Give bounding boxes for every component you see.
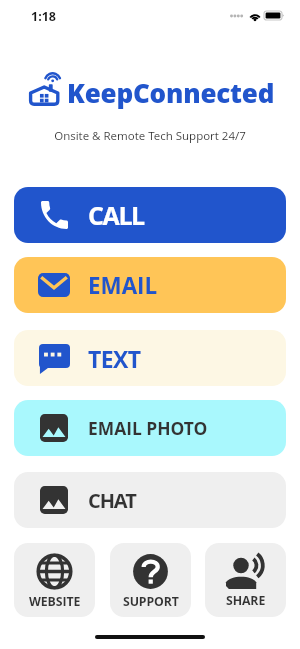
button[interactable]: TEXT: [14, 330, 286, 386]
button[interactable]: CALL: [14, 187, 286, 243]
button[interactable]: SUPPORT: [110, 543, 191, 617]
staticText: EMAIL PHOTO: [88, 416, 208, 440]
staticText: SUPPORT: [123, 593, 179, 610]
staticText: KeepConnected: [67, 75, 275, 110]
button[interactable]: WEBSITE: [14, 543, 95, 617]
staticText: CHAT: [88, 487, 136, 514]
staticText: WEBSITE: [29, 593, 81, 610]
staticText: Onsite & Remote Tech Support 24/7: [0, 128, 300, 144]
button[interactable]: EMAIL PHOTO: [14, 400, 286, 456]
staticText: CALL: [88, 198, 144, 232]
button[interactable]: EMAIL: [14, 257, 286, 313]
staticText: SHARE: [226, 592, 266, 609]
button[interactable]: CHAT: [14, 472, 286, 528]
button[interactable]: SHARE: [205, 543, 286, 617]
staticText: TEXT: [88, 343, 141, 374]
staticText: EMAIL: [88, 270, 158, 301]
staticText: 1:18: [31, 8, 56, 25]
